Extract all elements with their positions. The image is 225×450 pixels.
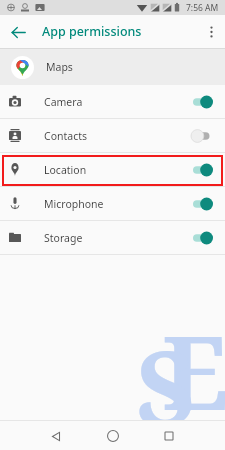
- staticText: S: [136, 316, 196, 450]
- staticText: 7:56 AM: [186, 2, 219, 14]
- button[interactable]: Back: [5, 19, 31, 45]
- button[interactable]: Contacts: [0, 119, 225, 152]
- staticText: Maps: [46, 60, 73, 74]
- staticText: Microphone: [44, 197, 104, 211]
- staticText: Storage: [44, 231, 83, 245]
- staticText: E: [162, 301, 225, 440]
- staticText: App permissions: [42, 23, 142, 40]
- staticText: Camera: [44, 95, 83, 109]
- button[interactable]: Maps: [0, 49, 225, 85]
- button[interactable]: [192, 162, 213, 178]
- button[interactable]: [192, 94, 213, 110]
- button[interactable]: Recent apps: [155, 422, 183, 450]
- button[interactable]: Microphone: [0, 187, 225, 220]
- button[interactable]: Storage: [0, 221, 225, 254]
- staticText: Contacts: [44, 129, 88, 143]
- button[interactable]: Camera: [0, 85, 225, 118]
- button[interactable]: Home: [99, 422, 127, 450]
- button[interactable]: More options: [199, 20, 223, 44]
- button[interactable]: [192, 128, 213, 144]
- button[interactable]: [192, 196, 213, 212]
- button[interactable]: Location: [0, 153, 225, 186]
- staticText: Location: [44, 163, 87, 177]
- button[interactable]: [192, 230, 213, 246]
- button[interactable]: Back: [42, 422, 70, 450]
